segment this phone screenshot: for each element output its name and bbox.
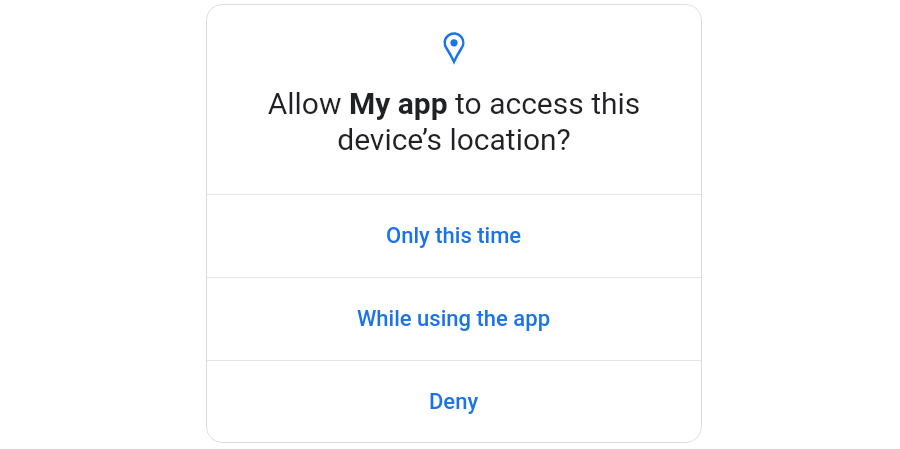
staticText: While using the app <box>357 306 551 332</box>
staticText: Only this time <box>386 223 522 249</box>
staticText: Deny <box>429 389 479 415</box>
button[interactable]: Deny <box>206 361 702 443</box>
button[interactable]: While using the app <box>206 278 702 360</box>
staticText: Allow My app to access this device’s loc… <box>206 86 702 157</box>
button[interactable]: Only this time <box>206 195 702 277</box>
